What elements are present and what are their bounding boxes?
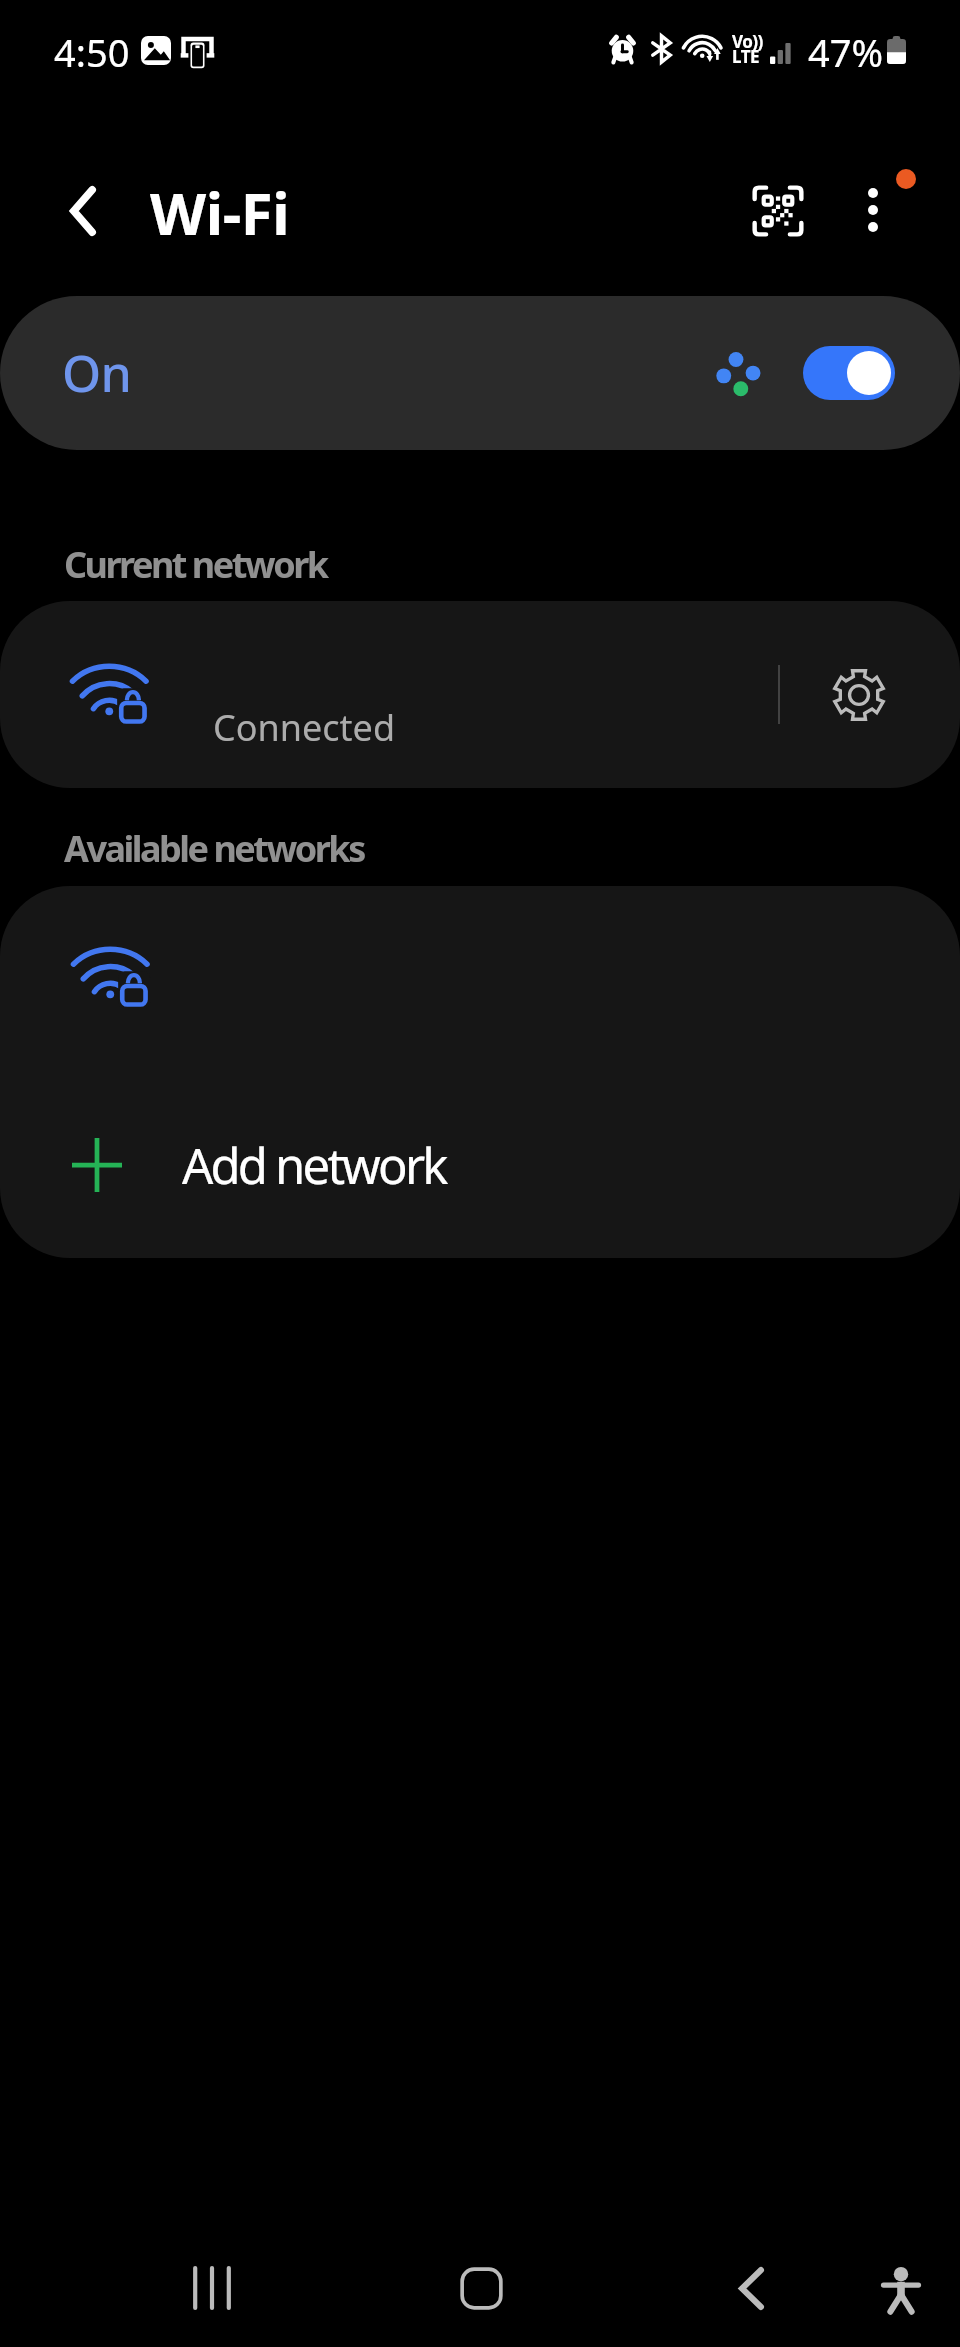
button[interactable]: Recent apps [172, 2234, 252, 2342]
button[interactable]: Scan QR code [737, 170, 819, 252]
button[interactable]: Connected [0, 601, 768, 788]
staticText: 4:50 [54, 26, 130, 78]
button[interactable]: Navigate up [47, 175, 119, 247]
staticText: LTE [732, 45, 759, 68]
staticText: On [62, 339, 132, 407]
staticText: Available networks [64, 824, 364, 873]
button[interactable]: Wi-Fi on/off [803, 346, 895, 400]
button[interactable]: Network settings [805, 601, 913, 788]
staticText: Vo)) [732, 30, 763, 53]
button[interactable]: Accessibility [861, 2237, 941, 2345]
staticText: Wi-Fi [150, 173, 290, 252]
staticText: 47% [808, 26, 884, 78]
staticText: Current network [64, 540, 327, 589]
button[interactable]: Back [711, 2234, 791, 2342]
button[interactable]: Home [441, 2234, 521, 2342]
button[interactable]: Add network [0, 1072, 960, 1258]
button[interactable] [0, 886, 960, 1072]
staticText: Add network [182, 1132, 446, 1199]
staticText: Connected [213, 703, 396, 752]
button[interactable]: On [0, 296, 960, 450]
button[interactable]: More options [832, 169, 914, 251]
